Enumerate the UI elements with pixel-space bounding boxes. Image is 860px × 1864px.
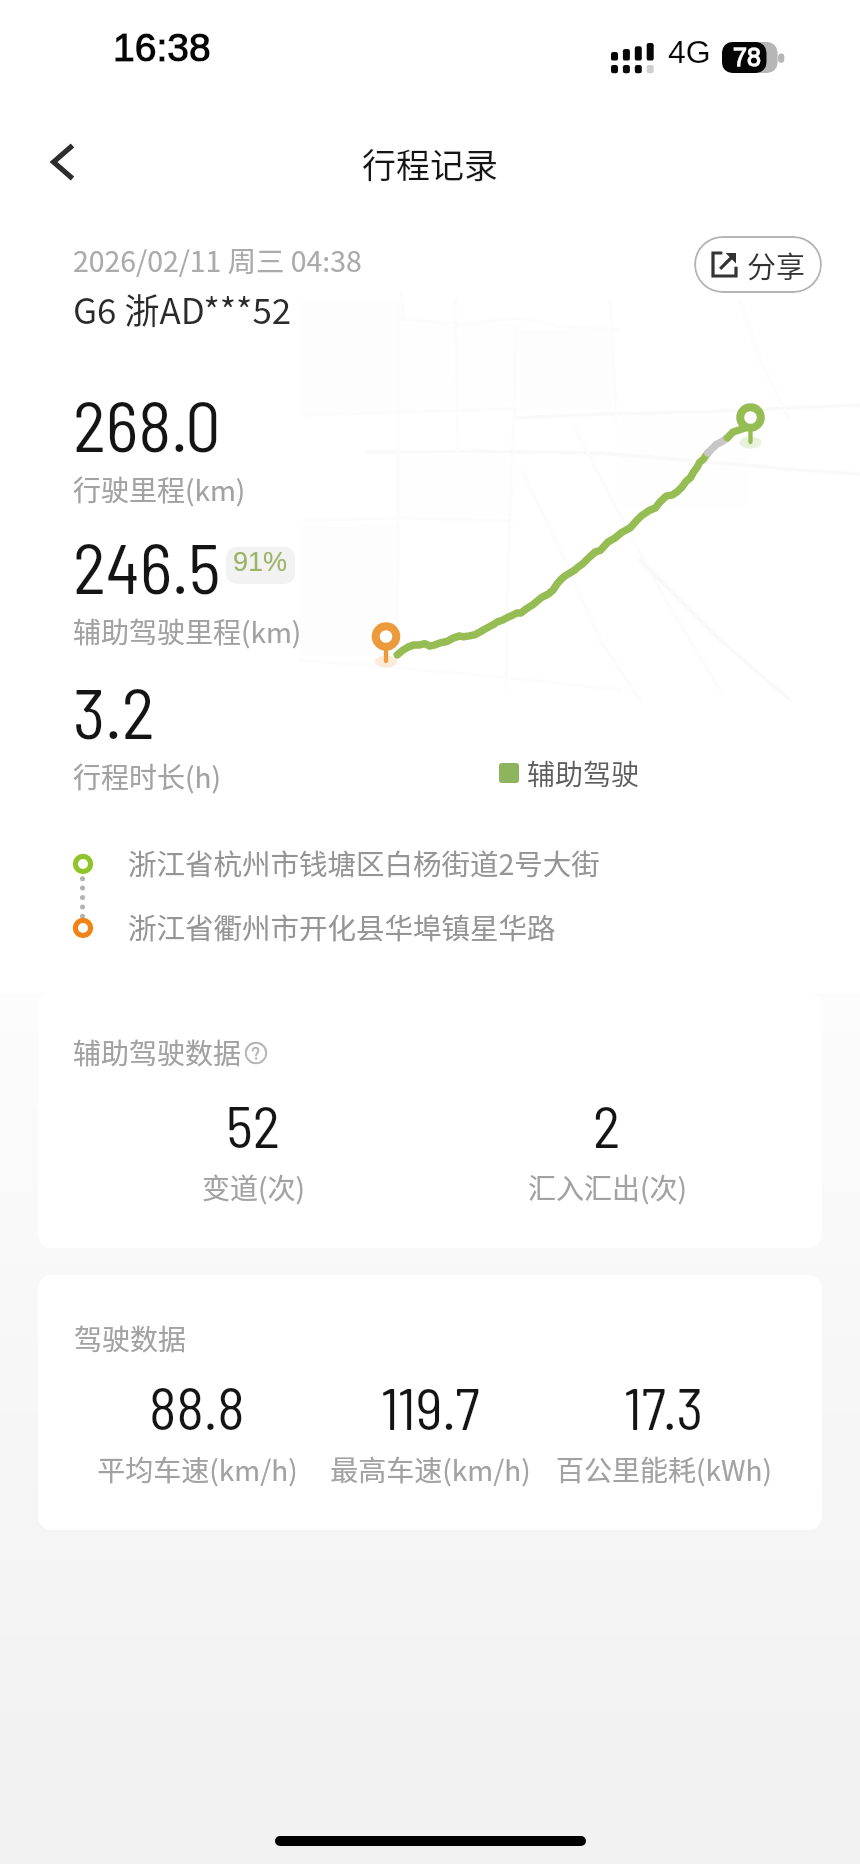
staticText: 辅助驾驶 xyxy=(527,753,640,794)
staticText: 2 xyxy=(593,1090,621,1160)
staticText: 浙江省衢州市开化县华埠镇星华路 xyxy=(128,906,556,947)
staticText: 浙江省杭州市钱塘区白杨街道2号大街 xyxy=(128,842,600,883)
button[interactable]: About assisted driving data xyxy=(245,1042,267,1064)
staticText: 4G xyxy=(668,34,711,70)
staticText: 驾驶数据 xyxy=(74,1318,187,1359)
staticText: G6 浙AD***52 xyxy=(73,283,292,334)
staticText: 78 xyxy=(733,43,761,71)
staticText: 辅助驾驶里程(km) xyxy=(73,611,302,652)
staticText: 汇入汇出(次) xyxy=(528,1167,687,1208)
staticText: 16:38 xyxy=(113,26,211,70)
button[interactable]: 分享 xyxy=(694,236,822,293)
staticText: 52 xyxy=(226,1090,280,1160)
staticText: 3.2 xyxy=(73,669,155,753)
staticText: 变道(次) xyxy=(202,1167,305,1208)
staticText: 91% xyxy=(233,547,288,577)
staticText: 行程记录 xyxy=(362,139,498,188)
staticText: 分享 xyxy=(747,244,806,286)
staticText: 行程时长(h) xyxy=(73,756,221,797)
staticText: 246.5 xyxy=(73,524,221,608)
staticText: 88.8 xyxy=(149,1372,245,1442)
staticText: 268.0 xyxy=(73,382,221,466)
staticText: 17.3 xyxy=(624,1372,704,1442)
staticText: 行驶里程(km) xyxy=(73,469,246,510)
button[interactable]: Back xyxy=(31,130,95,194)
staticText: 百公里能耗(kWh) xyxy=(556,1449,772,1490)
staticText: 119.7 xyxy=(381,1372,480,1442)
staticText: 辅助驾驶数据 xyxy=(73,1032,242,1073)
staticText: 2026/02/11 周三 04:38 xyxy=(73,239,362,280)
staticText: 最高车速(km/h) xyxy=(330,1449,531,1490)
staticText: 平均车速(km/h) xyxy=(97,1449,298,1490)
